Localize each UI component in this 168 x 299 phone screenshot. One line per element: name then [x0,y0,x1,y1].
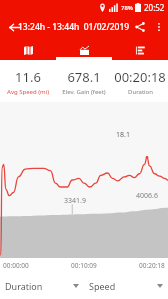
staticText: 00:00:00 [3,261,29,270]
button[interactable]: Speed [84,280,168,292]
button[interactable]: Back [4,17,24,37]
staticText: 20:52 [144,2,165,13]
staticText: Speed [89,280,116,292]
staticText: 18.1 [116,130,130,140]
staticText: 00:10:09 [71,261,97,270]
button[interactable]: 00:20:18 [112,68,168,96]
staticText: 13:24h - 13:44h 01/02/2019 [18,21,130,33]
button[interactable]: 678.1 [56,68,112,96]
button[interactable]: Splits [112,40,168,60]
button[interactable]: Map [0,40,56,60]
staticText: 00:20:18 [139,261,165,270]
staticText: Duration [128,88,153,96]
staticText: 78% [121,4,133,12]
button[interactable]: More options [150,18,168,36]
button[interactable]: Duration [0,280,84,292]
staticText: 00:20:18 [114,68,166,86]
button[interactable]: Share [130,17,150,37]
staticText: Elev. Gain (feet) [62,88,106,96]
button[interactable]: Charts [56,40,112,60]
staticText: 3341.9 [64,196,86,206]
staticText: Duration [5,280,43,292]
staticText: 678.1 [67,68,101,86]
button[interactable]: 11.6 [0,68,56,96]
staticText: 11.6 [15,68,41,86]
staticText: Avg Speed (mi) [7,88,49,96]
staticText: 4006.6 [136,191,158,201]
